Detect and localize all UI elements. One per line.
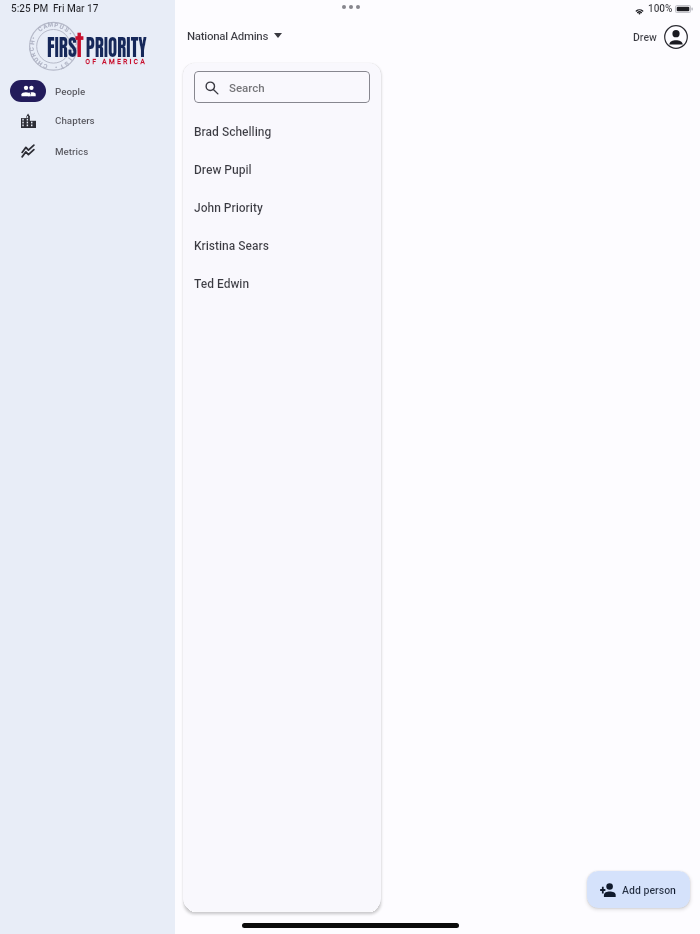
staticText: OF AMERICA [0, 58, 147, 66]
button[interactable]: Metrics [0, 140, 175, 162]
staticText: 100% [648, 3, 673, 15]
other: Search [205, 81, 219, 95]
staticText: National Admins [187, 29, 269, 42]
button[interactable]: Add person [587, 871, 690, 908]
button[interactable]: Search [194, 71, 370, 103]
button[interactable]: National Admins [187, 23, 282, 47]
button[interactable]: Drew [633, 24, 688, 49]
staticText: Chapters [55, 115, 95, 126]
staticText: Kristina Sears [194, 239, 269, 253]
other: Account [664, 25, 688, 49]
button[interactable]: Ted Edwin [183, 265, 381, 303]
staticText: Drew Pupil [194, 163, 252, 177]
staticText: John Priority [194, 201, 263, 215]
staticText: People [55, 86, 86, 97]
staticText: Add person [622, 884, 676, 896]
button[interactable]: Brad Schelling [183, 113, 381, 151]
button[interactable]: People [0, 80, 175, 102]
button[interactable]: John Priority [183, 189, 381, 227]
staticText: Brad Schelling [194, 125, 272, 139]
staticText: Search [229, 81, 265, 94]
staticText: Metrics [55, 146, 89, 157]
button[interactable]: Chapters [0, 109, 175, 131]
staticText: PRIORITY [86, 30, 147, 65]
staticText: Drew [633, 31, 657, 43]
staticText: 5:25 PM [11, 3, 49, 15]
button[interactable]: Drew Pupil [183, 151, 381, 189]
staticText: Fri Mar 17 [53, 3, 99, 15]
staticText: Ted Edwin [194, 277, 250, 291]
staticText: FIRS [47, 30, 77, 65]
button[interactable]: Kristina Sears [183, 227, 381, 265]
